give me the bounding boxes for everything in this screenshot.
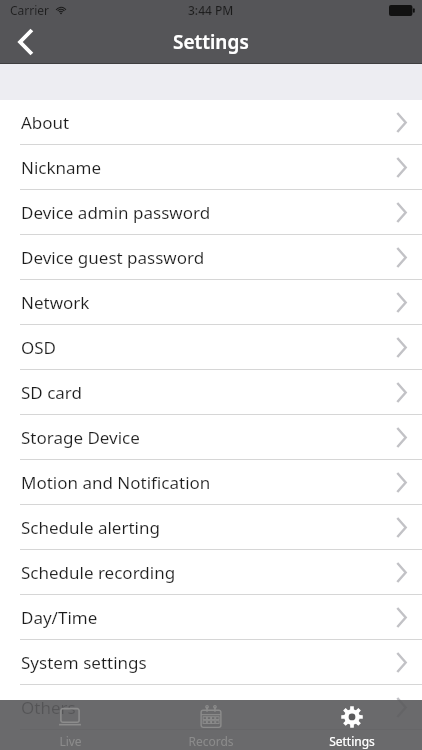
button[interactable]: Live bbox=[0, 700, 140, 750]
staticText: Storage Device bbox=[21, 426, 140, 449]
staticText: Schedule recording bbox=[21, 561, 176, 584]
button[interactable]: Nickname bbox=[0, 145, 422, 190]
staticText: Device guest password bbox=[21, 246, 205, 269]
staticText: Nickname bbox=[21, 156, 102, 179]
button[interactable]: Motion and Notification bbox=[0, 460, 422, 505]
button[interactable]: Storage Device bbox=[0, 415, 422, 460]
button[interactable]: Device guest password bbox=[0, 235, 422, 280]
staticText: About bbox=[21, 111, 70, 134]
button[interactable]: SD card bbox=[0, 370, 422, 415]
button[interactable]: Others bbox=[0, 685, 422, 730]
staticText: SD card bbox=[21, 381, 82, 404]
staticText: OSD bbox=[21, 336, 57, 359]
button[interactable]: Network bbox=[0, 280, 422, 325]
button[interactable]: Schedule recording bbox=[0, 550, 422, 595]
staticText: Network bbox=[21, 291, 90, 314]
staticText: Others bbox=[21, 696, 76, 719]
staticText: Schedule alerting bbox=[21, 516, 160, 539]
button[interactable]: OSD bbox=[0, 325, 422, 370]
staticText: Carrier bbox=[10, 2, 50, 18]
staticText: 3:44 PM bbox=[188, 2, 234, 18]
staticText: Live bbox=[59, 733, 82, 749]
button[interactable]: Back bbox=[0, 20, 52, 64]
staticText: Records bbox=[188, 733, 234, 749]
staticText: Settings bbox=[173, 29, 249, 55]
staticText: Device admin password bbox=[21, 201, 211, 224]
button[interactable]: Schedule alerting bbox=[0, 505, 422, 550]
button[interactable]: Device admin password bbox=[0, 190, 422, 235]
staticText: Day/Time bbox=[21, 606, 98, 629]
button[interactable]: System settings bbox=[0, 640, 422, 685]
staticText: Motion and Notification bbox=[21, 471, 211, 494]
button[interactable]: Day/Time bbox=[0, 595, 422, 640]
button[interactable]: Records bbox=[140, 700, 281, 750]
button[interactable]: Settings bbox=[281, 700, 422, 750]
button[interactable]: About bbox=[0, 100, 422, 145]
staticText: System settings bbox=[21, 651, 147, 674]
staticText: Settings bbox=[329, 733, 375, 749]
